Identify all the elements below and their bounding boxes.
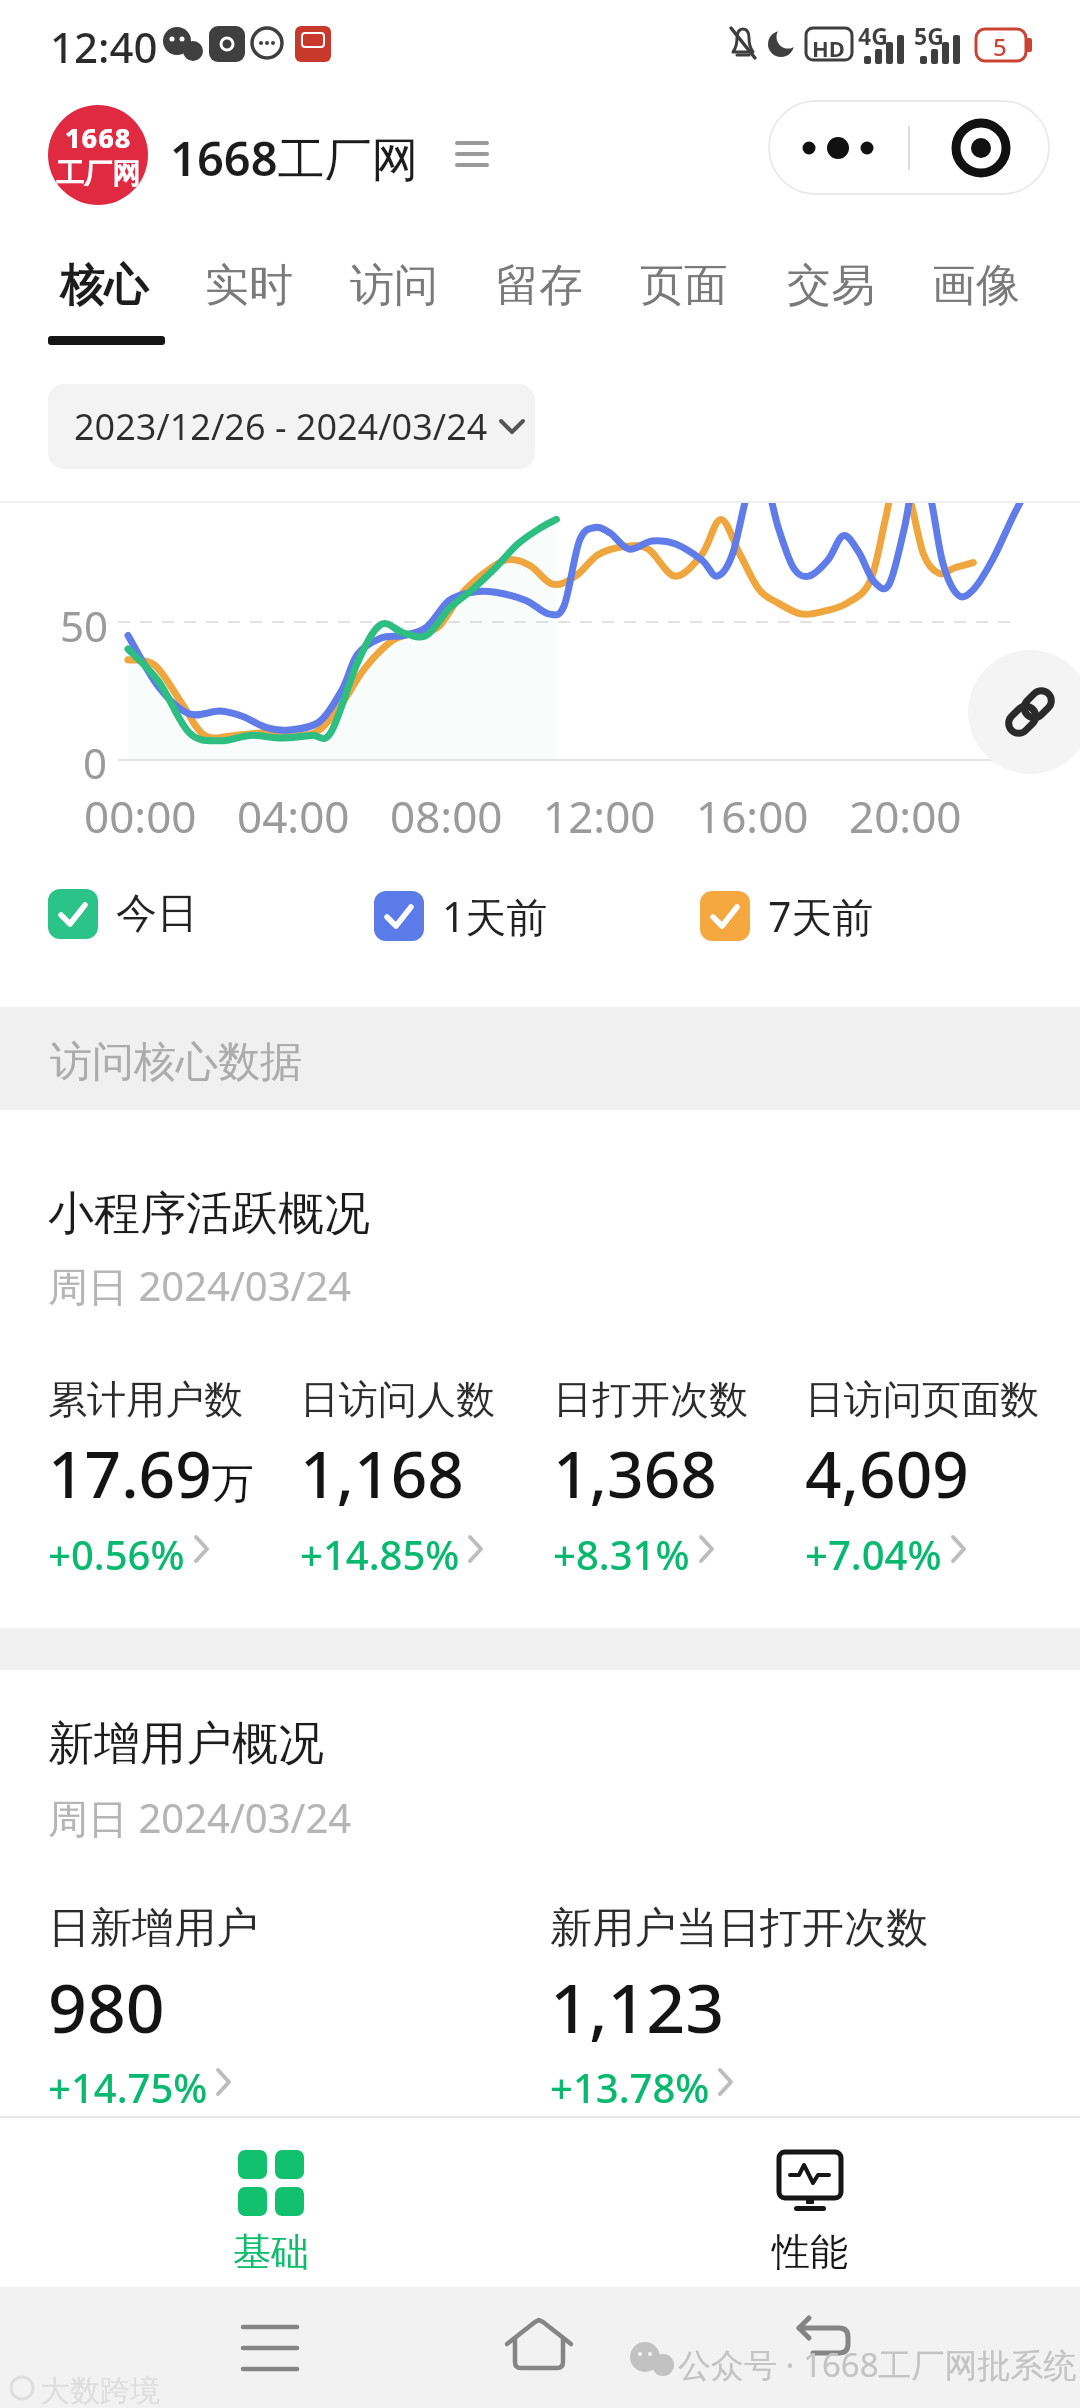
- staticText: 1,123: [550, 1960, 725, 2053]
- staticText: 性能: [772, 2228, 848, 2276]
- button[interactable]: 核心: [46, 244, 162, 327]
- staticText: 日访问人数: [300, 1375, 495, 1424]
- button[interactable]: 1天前: [374, 888, 548, 944]
- staticText: 980: [48, 1960, 165, 2053]
- button[interactable]: [968, 650, 1080, 774]
- staticText: HD: [812, 33, 845, 63]
- staticText: 7天前: [768, 888, 874, 944]
- staticText: 交易: [787, 258, 875, 313]
- staticText: 周日 2024/03/24: [48, 1790, 352, 1845]
- button[interactable]: 基础: [190, 2130, 350, 2280]
- staticText: +7.04%: [805, 1527, 942, 1581]
- staticText: 12:00: [543, 786, 656, 846]
- staticText: 基础: [233, 2228, 309, 2276]
- staticText: +13.78%: [550, 2060, 710, 2114]
- staticText: 17.69万: [48, 1430, 254, 1517]
- staticText: 1,368: [553, 1430, 717, 1517]
- staticText: 画像: [932, 258, 1020, 313]
- staticText: 累计用户数: [48, 1375, 243, 1424]
- button[interactable]: [48, 1894, 298, 2104]
- staticText: 访问核心数据: [50, 1036, 302, 1089]
- staticText: 1天前: [442, 888, 548, 944]
- staticText: 0: [83, 734, 108, 791]
- staticText: 5: [993, 30, 1007, 63]
- button[interactable]: [553, 1367, 803, 1577]
- staticText: 留存: [495, 258, 583, 313]
- staticText: 周日 2024/03/24: [48, 1258, 352, 1313]
- button[interactable]: [770, 2300, 870, 2395]
- staticText: +14.75%: [48, 2060, 208, 2114]
- staticText: 4,609: [805, 1430, 969, 1517]
- staticText: 访问: [350, 258, 438, 313]
- staticText: 00:00: [84, 786, 197, 846]
- staticText: 16:00: [696, 786, 809, 846]
- staticText: 小程序活跃概况: [48, 1185, 370, 1243]
- button[interactable]: [805, 1367, 1055, 1577]
- staticText: 大数跨境: [40, 2372, 160, 2408]
- button[interactable]: 今日: [48, 888, 198, 940]
- staticText: 日打开次数: [553, 1375, 748, 1424]
- staticText: +14.85%: [300, 1527, 460, 1581]
- staticText: 1668工厂网: [170, 126, 419, 190]
- button[interactable]: [909, 100, 1050, 195]
- button[interactable]: 留存: [481, 244, 597, 327]
- staticText: +8.31%: [553, 1527, 690, 1581]
- button[interactable]: 7天前: [700, 888, 874, 944]
- button[interactable]: 2023/12/26 - 2024/03/24: [48, 384, 535, 469]
- staticText: 新增用户概况: [48, 1715, 324, 1773]
- staticText: 工厂网: [56, 156, 140, 191]
- staticText: 页面: [640, 258, 728, 313]
- button[interactable]: [768, 100, 909, 195]
- staticText: 1,168: [300, 1430, 464, 1517]
- button[interactable]: [220, 2300, 320, 2395]
- staticText: 实时: [205, 258, 293, 313]
- button[interactable]: [48, 1367, 298, 1577]
- staticText: 20:00: [849, 786, 962, 846]
- button[interactable]: 交易: [773, 244, 889, 327]
- button[interactable]: 画像: [918, 244, 1034, 327]
- staticText: 08:00: [390, 786, 503, 846]
- staticText: 50: [60, 597, 109, 654]
- staticText: 日新增用户: [48, 1902, 258, 1955]
- staticText: 2023/12/26 - 2024/03/24: [74, 402, 488, 451]
- button[interactable]: [550, 1894, 800, 2104]
- staticText: 核心: [60, 258, 148, 313]
- staticText: 日访问页面数: [805, 1375, 1039, 1424]
- button[interactable]: 页面: [626, 244, 742, 327]
- staticText: 4G: [858, 20, 888, 51]
- staticText: 12:40: [50, 18, 158, 75]
- button[interactable]: 实时: [191, 244, 307, 327]
- staticText: 04:00: [237, 786, 350, 846]
- staticText: +0.56%: [48, 1527, 185, 1581]
- button[interactable]: 性能: [730, 2130, 890, 2280]
- staticText: 今日: [116, 888, 198, 940]
- button[interactable]: [490, 2300, 590, 2395]
- staticText: 5G: [914, 20, 944, 51]
- staticText: 新用户当日打开次数: [550, 1902, 928, 1955]
- button[interactable]: [300, 1367, 550, 1577]
- staticText: 公众号 · 1668工厂网批系统: [678, 2342, 1077, 2387]
- staticText: 1668: [65, 119, 132, 156]
- button[interactable]: 访问: [336, 244, 452, 327]
